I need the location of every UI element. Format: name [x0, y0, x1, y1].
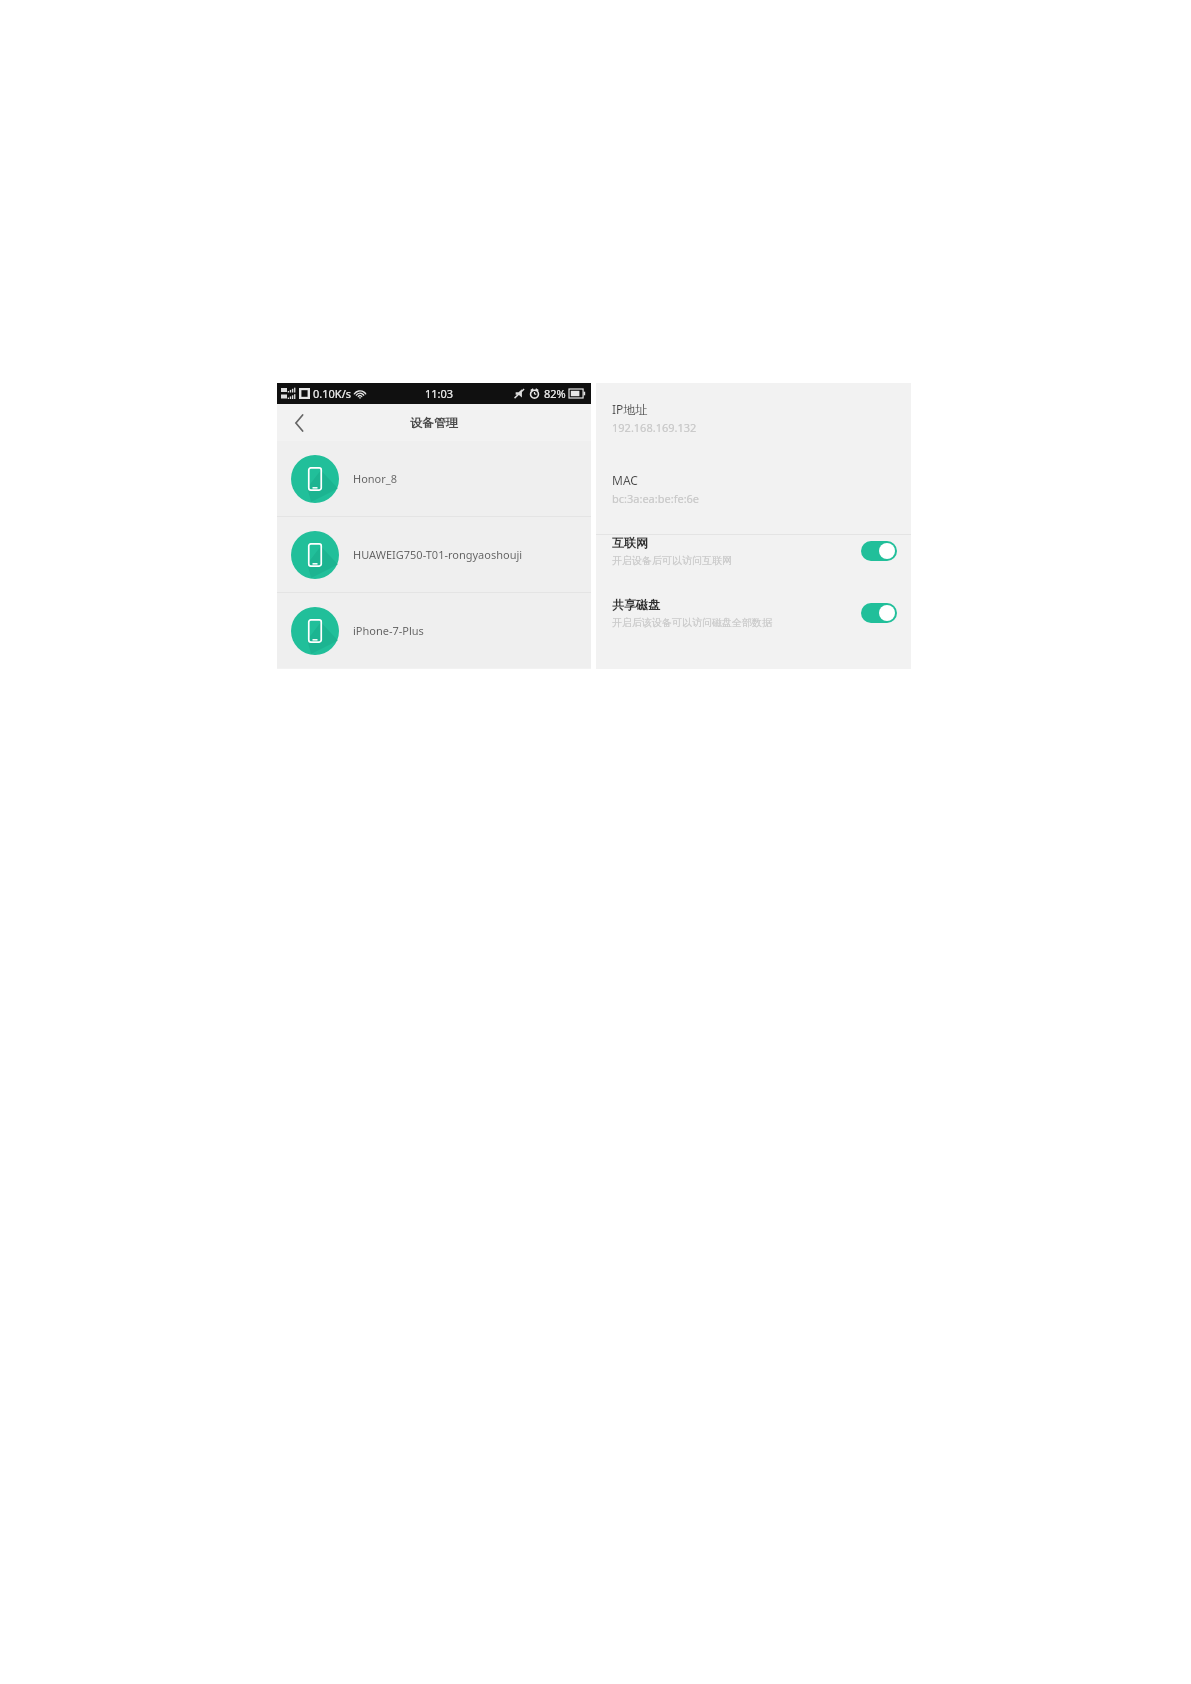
button[interactable]: iPhone-7-Plus: [277, 593, 591, 668]
button[interactable]: HUAWEIG750-T01-rongyaoshouji: [277, 517, 591, 592]
button[interactable]: Back: [285, 409, 313, 437]
staticText: 互联网: [612, 535, 648, 550]
staticText: HUAWEIG750-T01-rongyaoshouji: [353, 547, 523, 562]
staticText: 设备管理: [410, 415, 458, 430]
staticText: iPhone-7-Plus: [353, 623, 424, 638]
button[interactable]: 共享磁盘: [861, 603, 897, 623]
staticText: bc:3a:ea:be:fe:6e: [612, 491, 700, 506]
staticText: IP地址: [612, 401, 648, 417]
staticText: 开启后该设备可以访问磁盘全部数据: [612, 616, 772, 629]
staticText: Honor_8: [353, 471, 397, 486]
staticText: 11:03: [425, 386, 454, 401]
staticText: 82%: [544, 386, 566, 401]
staticText: 共享磁盘: [612, 597, 660, 612]
staticText: 开启设备后可以访问互联网: [612, 554, 732, 567]
button[interactable]: Honor_8: [277, 441, 591, 516]
button[interactable]: 互联网: [596, 535, 911, 567]
staticText: MAC: [612, 472, 638, 488]
button[interactable]: 共享磁盘: [596, 597, 911, 629]
staticText: 0.10K/s: [313, 386, 351, 401]
button[interactable]: 互联网: [861, 541, 897, 561]
staticText: 192.168.169.132: [612, 420, 697, 435]
